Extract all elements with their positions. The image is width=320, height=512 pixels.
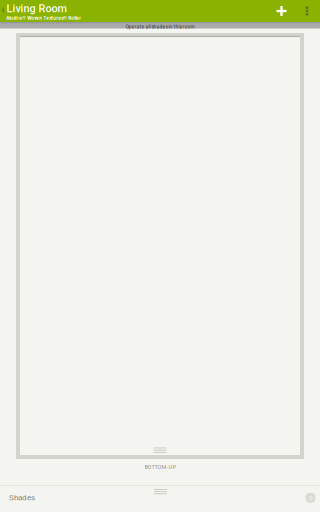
staticText: Alustra® Woven Textures® Roller	[6, 15, 81, 21]
button[interactable]: Shade position	[16, 33, 304, 459]
button[interactable]: Operate all shades in this room	[0, 22, 320, 28]
button[interactable]: Shades	[0, 485, 320, 512]
staticText: BOTTOM-UP	[144, 464, 175, 470]
staticText: Living Room	[7, 2, 68, 15]
button[interactable]: Living Room	[0, 0, 200, 22]
staticText: Operate all shades in this room	[125, 24, 194, 30]
button[interactable]: Add	[266, 0, 296, 22]
staticText: Shades	[9, 493, 35, 502]
staticText: 1	[309, 494, 312, 501]
button[interactable]: More options	[296, 0, 318, 22]
